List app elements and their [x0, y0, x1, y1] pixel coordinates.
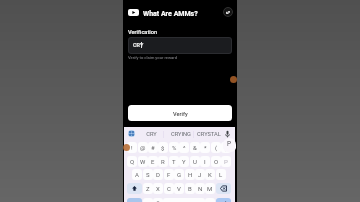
staticText: ! [131, 144, 133, 151]
button[interactable]: N [195, 183, 205, 194]
button[interactable]: Q [127, 156, 137, 167]
button[interactable]: P [221, 156, 231, 167]
button[interactable]: % [169, 142, 179, 153]
button[interactable]: L [216, 169, 226, 180]
staticText: Q [130, 158, 135, 165]
button[interactable]: Verify [128, 105, 232, 121]
button[interactable]: V [174, 183, 184, 194]
staticText: F [167, 171, 171, 178]
other: YouTube [128, 9, 139, 16]
staticText: ^ [183, 144, 186, 151]
staticText: K [208, 171, 212, 178]
staticText: CRY [146, 131, 157, 138]
staticText: D [156, 171, 160, 178]
staticText: T [172, 158, 176, 165]
button[interactable]: Share [223, 7, 233, 17]
staticText: What Are AMMs? [143, 10, 198, 18]
button[interactable]: T [169, 156, 179, 167]
staticText: W [140, 158, 146, 165]
button[interactable]: B [185, 183, 195, 194]
staticText: CRYSTAL [197, 131, 221, 138]
button[interactable]: Voice input [224, 130, 231, 138]
staticText: Verify to claim your reward [128, 55, 177, 60]
staticText: $ [161, 144, 165, 151]
button[interactable]: CRYING [167, 127, 195, 141]
staticText: Y [182, 158, 186, 165]
button[interactable]: CRYSTAL [195, 127, 223, 141]
button[interactable]: S [143, 169, 153, 180]
staticText: N [198, 185, 203, 192]
staticText: X [156, 185, 160, 192]
button[interactable]: ^ [179, 142, 189, 153]
staticText: % [172, 144, 177, 151]
staticText: C [167, 185, 171, 192]
button[interactable]: Enter [216, 198, 231, 202]
button[interactable]: @ [138, 142, 148, 153]
button[interactable]: ?123 [127, 198, 142, 202]
staticText: I [204, 158, 206, 165]
staticText: CRY [133, 42, 144, 48]
button[interactable]: Backspace [216, 183, 231, 194]
staticText: P [224, 158, 228, 165]
staticText: O [214, 158, 219, 165]
button[interactable]: C [164, 183, 174, 194]
button[interactable]: Z [143, 183, 153, 194]
staticText: Verification [128, 29, 158, 36]
staticText: G [177, 171, 182, 178]
button[interactable]: X [153, 183, 163, 194]
button[interactable]: # [148, 142, 158, 153]
staticText: M [207, 185, 213, 192]
staticText: P [227, 140, 232, 148]
staticText: V [177, 185, 181, 192]
button[interactable]: F [164, 169, 174, 180]
button[interactable]: K [205, 169, 215, 180]
button[interactable]: * [200, 142, 210, 153]
staticText: & [193, 144, 197, 151]
button[interactable]: U [190, 156, 200, 167]
button[interactable]: ) [221, 142, 231, 153]
staticText: L [219, 171, 223, 178]
button[interactable]: O [211, 156, 221, 167]
button[interactable]: W [138, 156, 148, 167]
staticText: * [204, 144, 207, 151]
button[interactable]: R [158, 156, 168, 167]
staticText: R [161, 158, 165, 165]
staticText: CRYING [171, 131, 191, 138]
staticText: Verify [173, 111, 188, 118]
staticText: # [151, 144, 155, 151]
button[interactable]: J [195, 169, 205, 180]
button[interactable]: $ [158, 142, 168, 153]
button[interactable]: . [205, 198, 215, 202]
staticText: ( [215, 144, 218, 151]
button[interactable]: Y [179, 156, 189, 167]
button[interactable]: I [200, 156, 210, 167]
button[interactable]: ( [211, 142, 221, 153]
button[interactable]: , [143, 198, 153, 202]
staticText: J [198, 171, 202, 178]
button[interactable]: Keyboard settings [128, 130, 135, 137]
button[interactable]: D [153, 169, 163, 180]
staticText: ) [225, 144, 228, 151]
staticText: S [146, 171, 150, 178]
staticText: A [135, 171, 139, 178]
button[interactable]: M [205, 183, 215, 194]
button[interactable]: & [190, 142, 200, 153]
staticText: @ [140, 144, 146, 151]
button[interactable]: CRY [128, 37, 232, 54]
button[interactable]: H [185, 169, 195, 180]
button[interactable]: Shift [127, 183, 142, 194]
button[interactable]: Emoji [153, 198, 163, 202]
staticText: U [193, 158, 197, 165]
staticText: E [151, 158, 155, 165]
button[interactable]: G [174, 169, 184, 180]
button[interactable]: ! [127, 142, 137, 153]
button[interactable]: CRY [137, 127, 165, 141]
staticText: B [188, 185, 192, 192]
button[interactable]: E [148, 156, 158, 167]
staticText: Z [146, 185, 150, 192]
button[interactable]: A [132, 169, 142, 180]
staticText: H [188, 171, 193, 178]
